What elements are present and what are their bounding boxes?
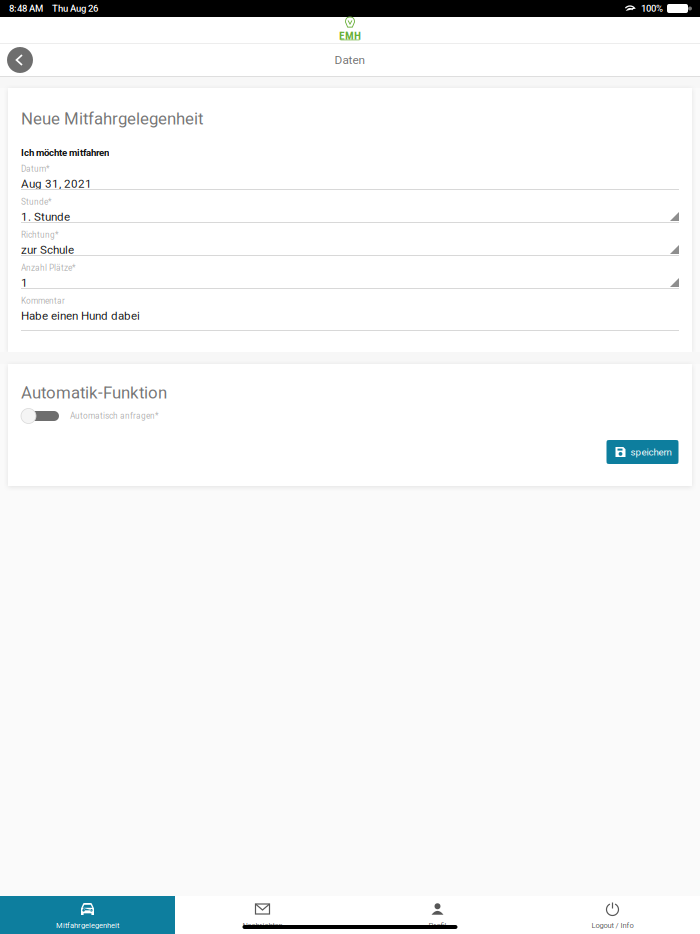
button[interactable]: Mitfahrgelegenheit bbox=[0, 896, 175, 934]
staticText: Logout / Info bbox=[591, 921, 633, 930]
staticText: Datum* bbox=[21, 164, 50, 174]
staticText: Mitfahrgelegenheit bbox=[56, 921, 119, 930]
staticText: Habe einen Hund dabei bbox=[21, 309, 140, 323]
button[interactable]: Nachrichten bbox=[175, 896, 350, 934]
staticText: Nachrichten bbox=[242, 921, 282, 930]
button[interactable]: Profil bbox=[350, 896, 525, 934]
staticText: EMH bbox=[339, 29, 361, 42]
staticText: Richtung* bbox=[21, 230, 59, 240]
staticText: zur Schule bbox=[21, 243, 74, 257]
staticText: 1. Stunde bbox=[21, 210, 70, 224]
staticText: Automatik-Funktion bbox=[21, 383, 167, 403]
staticText: 1 bbox=[21, 276, 28, 290]
staticText: 8:48 AM bbox=[9, 3, 43, 14]
staticText: Aug 31, 2021 bbox=[21, 177, 92, 191]
staticText: Stunde* bbox=[21, 197, 52, 207]
button[interactable]: Automatisch anfragen bbox=[21, 407, 692, 425]
staticText: Anzahl Plätze* bbox=[21, 263, 76, 273]
staticText: Kommentar bbox=[21, 296, 65, 306]
button[interactable]: speichern bbox=[606, 440, 678, 464]
staticText: Ich möchte mitfahren bbox=[21, 147, 109, 158]
staticText: 100% bbox=[641, 3, 663, 14]
button[interactable]: Logout / Info bbox=[525, 896, 700, 934]
staticText: Neue Mitfahrgelegenheit bbox=[21, 109, 203, 129]
staticText: speichern bbox=[630, 446, 671, 458]
staticText: Profil bbox=[428, 921, 446, 930]
button[interactable]: Back bbox=[0, 44, 40, 76]
staticText: Thu Aug 26 bbox=[52, 3, 98, 14]
staticText: Daten bbox=[334, 53, 365, 67]
staticText: Automatisch anfragen* bbox=[70, 411, 159, 421]
